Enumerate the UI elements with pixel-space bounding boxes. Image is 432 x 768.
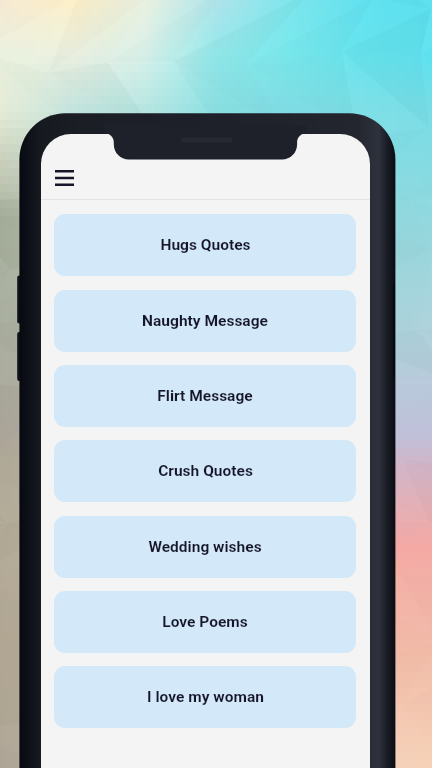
button[interactable]: Hugs Quotes bbox=[54, 214, 356, 276]
button[interactable]: Wedding wishes bbox=[54, 516, 356, 578]
button[interactable]: Love Poems bbox=[54, 591, 356, 653]
staticText: Naughty Message bbox=[142, 312, 268, 330]
staticText: Crush Quotes bbox=[158, 462, 253, 480]
button[interactable]: Flirt Message bbox=[54, 365, 356, 427]
button[interactable]: Open navigation menu bbox=[42, 159, 86, 197]
staticText: Wedding wishes bbox=[148, 538, 262, 556]
staticText: I love my woman bbox=[147, 688, 264, 706]
staticText: Flirt Message bbox=[157, 387, 253, 405]
staticText: Hugs Quotes bbox=[160, 236, 251, 254]
button[interactable]: I love my woman bbox=[54, 666, 356, 728]
button[interactable]: Naughty Message bbox=[54, 290, 356, 352]
button[interactable]: Crush Quotes bbox=[54, 440, 356, 502]
staticText: Love Poems bbox=[162, 613, 248, 631]
